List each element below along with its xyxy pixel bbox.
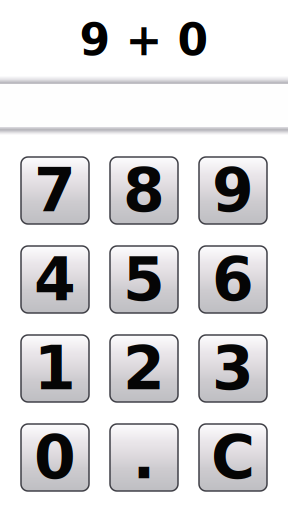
staticText: 9 — [212, 156, 254, 225]
button[interactable]: 9 — [199, 157, 267, 224]
staticText: 1 — [34, 334, 76, 403]
button[interactable]: 6 — [199, 246, 267, 313]
staticText: 8 — [123, 156, 165, 225]
staticText: 6 — [212, 245, 254, 314]
staticText: 2 — [123, 334, 165, 403]
button[interactable]: 0 — [21, 424, 89, 491]
staticText: C — [211, 423, 255, 492]
button[interactable]: 1 — [21, 335, 89, 402]
staticText: 3 — [212, 334, 254, 403]
button[interactable]: 8 — [110, 157, 178, 224]
staticText: 0 — [34, 423, 76, 492]
staticText: 5 — [123, 245, 165, 314]
button[interactable]: 5 — [110, 246, 178, 313]
button[interactable]: 3 — [199, 335, 267, 402]
button[interactable]: . — [110, 424, 178, 491]
staticText: 4 — [34, 245, 76, 314]
button[interactable]: 4 — [21, 246, 89, 313]
staticText: 7 — [34, 156, 76, 225]
staticText: 9 + 0 — [79, 14, 208, 66]
button[interactable]: 7 — [21, 157, 89, 224]
button[interactable]: C — [199, 424, 267, 491]
button[interactable]: 2 — [110, 335, 178, 402]
staticText: . — [132, 423, 155, 492]
